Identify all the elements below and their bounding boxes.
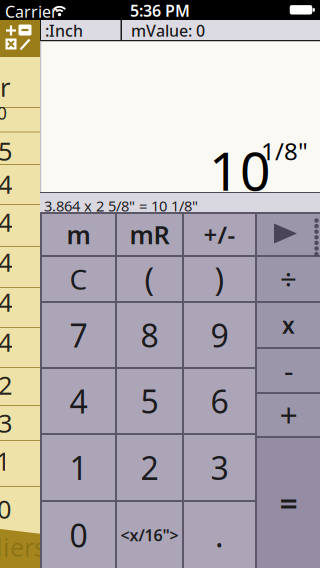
- staticText: +/-: [203, 219, 235, 250]
- staticText: <x/16">: [120, 524, 178, 546]
- staticText: 4: [0, 285, 12, 319]
- button[interactable]: 2: [117, 435, 182, 500]
- button[interactable]: 2: [0, 368, 47, 402]
- button[interactable]: x: [257, 303, 320, 347]
- button[interactable]: More operations: [257, 214, 320, 255]
- button[interactable]: ): [184, 257, 255, 301]
- button[interactable]: mValue: 0: [122, 20, 320, 40]
- staticText: 3: [210, 446, 228, 489]
- button[interactable]: r: [0, 70, 47, 104]
- staticText: 10: [209, 135, 271, 205]
- staticText: 4: [0, 245, 12, 279]
- staticText: 4: [0, 325, 12, 359]
- button[interactable]: 9: [184, 303, 255, 367]
- button[interactable]: 0: [0, 492, 46, 526]
- button[interactable]: mR: [117, 214, 182, 255]
- button[interactable]: 3: [184, 435, 255, 500]
- button[interactable]: 0: [42, 502, 115, 568]
- staticText: mValue: 0: [131, 20, 205, 41]
- button[interactable]: =: [257, 438, 320, 568]
- staticText: =: [279, 482, 297, 524]
- button[interactable]: :Inch: [41, 20, 120, 40]
- staticText: 5: [0, 134, 12, 168]
- staticText: Carrier: [5, 1, 58, 22]
- button[interactable]: 0: [0, 96, 44, 130]
- staticText: ): [214, 258, 224, 300]
- button[interactable]: Calculator menu: [0, 20, 40, 57]
- button[interactable]: 5: [117, 369, 182, 433]
- staticText: 0: [0, 101, 7, 124]
- button[interactable]: 3: [0, 406, 47, 440]
- button[interactable]: .: [184, 502, 255, 568]
- staticText: 1: [69, 446, 87, 489]
- staticText: .: [215, 514, 224, 556]
- staticText: 9: [210, 314, 228, 356]
- staticText: 7: [69, 314, 87, 356]
- staticText: 4: [0, 167, 12, 201]
- button[interactable]: 4: [0, 285, 47, 319]
- button[interactable]: ÷: [257, 257, 320, 301]
- button[interactable]: 4: [42, 369, 115, 433]
- staticText: 8: [140, 314, 158, 356]
- staticText: 5: [140, 380, 158, 422]
- staticText: mR: [129, 218, 169, 251]
- button[interactable]: 1: [0, 444, 45, 478]
- button[interactable]: (: [117, 257, 182, 301]
- button[interactable]: 4: [0, 205, 47, 239]
- staticText: x: [282, 310, 295, 340]
- button[interactable]: 5: [0, 134, 47, 168]
- staticText: -: [284, 351, 293, 390]
- button[interactable]: <x/16">: [117, 502, 182, 568]
- staticText: 5:36 PM: [130, 0, 190, 21]
- staticText: 4: [69, 380, 87, 422]
- button[interactable]: 7: [42, 303, 115, 367]
- staticText: 3.864 x 2 5/8" = 10 1/8": [44, 196, 198, 215]
- button[interactable]: liers: [0, 529, 63, 565]
- staticText: (: [144, 258, 154, 300]
- staticText: 2: [140, 446, 158, 489]
- staticText: ÷: [280, 259, 297, 298]
- button[interactable]: 8: [117, 303, 182, 367]
- staticText: liers: [0, 530, 46, 564]
- button[interactable]: +: [257, 394, 320, 436]
- staticText: :Inch: [45, 20, 83, 41]
- button[interactable]: 4: [0, 167, 47, 201]
- button[interactable]: 4: [0, 325, 47, 359]
- staticText: 0: [69, 514, 87, 556]
- button[interactable]: +/-: [184, 214, 255, 255]
- staticText: C: [69, 260, 87, 298]
- staticText: 3: [0, 406, 12, 440]
- staticText: 4: [0, 205, 12, 239]
- button[interactable]: 1: [42, 435, 115, 500]
- button[interactable]: m: [42, 214, 115, 255]
- staticText: 0: [0, 492, 11, 526]
- staticText: 1/8": [261, 135, 308, 167]
- staticText: m: [66, 218, 90, 251]
- staticText: r: [0, 70, 10, 104]
- button[interactable]: C: [42, 257, 115, 301]
- button[interactable]: 4: [0, 245, 47, 279]
- staticText: 2: [0, 368, 12, 402]
- button[interactable]: 6: [184, 369, 255, 433]
- button[interactable]: -: [257, 349, 320, 392]
- staticText: 1: [0, 444, 10, 478]
- staticText: +: [279, 394, 297, 436]
- staticText: 6: [210, 380, 228, 422]
